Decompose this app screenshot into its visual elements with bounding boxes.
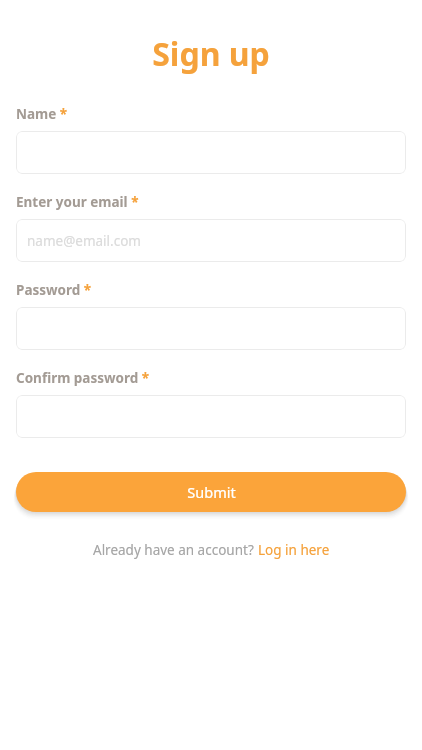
staticText: Password * [16, 281, 92, 299]
staticText: name@email.com [27, 232, 141, 250]
staticText: Enter your email * [16, 193, 139, 211]
button[interactable]: Log in here [258, 541, 330, 559]
staticText: Submit [187, 482, 236, 502]
staticText: Already have an account? [93, 541, 258, 559]
button[interactable]: name@email.com [16, 219, 406, 262]
staticText: Confirm password * [16, 369, 150, 387]
staticText: Log in here [258, 541, 330, 559]
button[interactable] [16, 307, 406, 350]
button[interactable] [16, 395, 406, 438]
staticText: Name * [16, 105, 68, 123]
button[interactable] [16, 131, 406, 174]
button[interactable]: Submit [16, 472, 406, 512]
staticText: Sign up [152, 32, 270, 76]
